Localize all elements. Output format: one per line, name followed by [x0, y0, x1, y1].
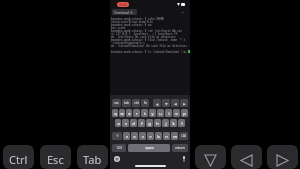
staticText: k — [172, 121, 175, 126]
button[interactable]: n — [163, 132, 170, 140]
staticText: brandon-angb:sshaio:~$ ls /sdcard/Downlo… — [111, 50, 187, 53]
staticText: y — [151, 111, 154, 116]
button[interactable]: q — [112, 109, 118, 117]
staticText: Ctrl — [9, 152, 28, 167]
staticText: ok: /etc/hosts No such file or directory — [111, 35, 176, 38]
staticText: z — [126, 134, 128, 139]
staticText: fn — [144, 101, 147, 105]
button[interactable]: esc — [112, 99, 121, 107]
button[interactable]: u — [157, 109, 164, 117]
staticText: Esc — [47, 152, 64, 167]
button[interactable]: o — [173, 109, 180, 117]
button[interactable]: d — [130, 119, 137, 127]
staticText: tab — [124, 101, 129, 105]
staticText: esc — [114, 101, 119, 105]
button[interactable]: j — [162, 119, 169, 127]
staticText: Terminal — [114, 10, 129, 15]
staticText: p — [183, 111, 186, 116]
button[interactable]: k — [170, 119, 177, 127]
button[interactable]: ⌫ — [179, 132, 188, 140]
staticText: brandon-angb:sshaio:~$ cat /etc/hosts &&… — [111, 29, 182, 32]
button[interactable]: b — [155, 132, 162, 140]
button[interactable]: space — [128, 144, 170, 152]
button[interactable]: Esc — [40, 145, 71, 169]
staticText: ▼ — [165, 102, 168, 105]
staticText: /data/user/0/com.term/file — [111, 20, 153, 23]
button[interactable]: ctrl — [132, 99, 140, 107]
staticText: x — [133, 134, 136, 139]
button[interactable]: fn — [141, 99, 149, 107]
staticText: t — [144, 111, 146, 116]
staticText: q — [114, 111, 117, 116]
button[interactable]: Tab — [77, 145, 108, 169]
staticText: i — [168, 111, 170, 116]
button[interactable]: v — [147, 132, 154, 140]
staticText: ctrl — [134, 101, 139, 105]
button[interactable]: g — [146, 119, 153, 127]
staticText: Tab — [83, 152, 102, 167]
staticText: 123 — [116, 146, 122, 150]
staticText: v — [149, 134, 152, 139]
staticText: c — [142, 134, 144, 139]
staticText: d — [132, 121, 135, 126]
staticText: u — [159, 111, 162, 116]
button[interactable]: h — [154, 119, 161, 127]
staticText: '/sdcard/Download/a.t — [111, 41, 145, 44]
button[interactable]: w — [119, 109, 125, 117]
button[interactable]: ◀ — [171, 99, 179, 107]
button[interactable]: r — [133, 109, 140, 117]
button[interactable]: ▲ — [153, 99, 161, 107]
staticText: w — [120, 111, 124, 116]
staticText: s — [125, 121, 127, 126]
button[interactable]: return — [172, 144, 188, 152]
staticText: o — [175, 111, 178, 116]
button[interactable]: Right — [267, 145, 298, 169]
staticText: brandon-angb:sshaio:~$ find /sdcard -nam… — [111, 38, 186, 41]
button[interactable]: Voice input — [181, 156, 187, 162]
button[interactable]: ▼ — [162, 99, 170, 107]
staticText: ⌫ — [181, 134, 186, 138]
staticText: ok: /sdcard/Download: No such file or di… — [111, 44, 187, 47]
button[interactable]: 123 — [112, 144, 126, 152]
button[interactable]: Down — [195, 145, 226, 169]
staticText: a — [117, 121, 120, 126]
staticText: h — [156, 121, 159, 126]
button[interactable]: Ctrl — [3, 145, 34, 169]
button[interactable]: x — [131, 132, 138, 140]
button[interactable]: Terminal — [112, 9, 137, 15]
button[interactable]: e — [126, 109, 132, 117]
staticText: return — [175, 146, 185, 150]
button[interactable]: i — [165, 109, 172, 117]
button[interactable]: tab — [122, 99, 131, 107]
staticText: + — [181, 9, 185, 17]
button[interactable]: ⇧ — [112, 132, 122, 140]
staticText: m — [173, 134, 177, 139]
button[interactable]: s — [122, 119, 129, 127]
button[interactable]: z — [123, 132, 130, 140]
button[interactable]: a — [115, 119, 121, 127]
staticText: ◀ — [174, 102, 177, 105]
staticText: n — [165, 134, 168, 139]
button[interactable]: y — [149, 109, 156, 117]
button[interactable]: t — [141, 109, 148, 117]
staticText: f — [141, 121, 143, 126]
staticText: b — [157, 134, 160, 139]
button[interactable]: Emoji — [114, 156, 120, 162]
staticText: brandon-angb:sshaio:~$ echo $HOME — [111, 17, 165, 20]
staticText: brandon-angb:sshaio:~$ pw — [111, 23, 152, 26]
staticText: j — [165, 121, 167, 126]
staticText: e — [128, 111, 131, 116]
staticText: /e 127.0.0.1 localhost ::1 localhost ff — [111, 32, 178, 35]
staticText: 00:46 — [119, 3, 128, 7]
button[interactable]: p — [181, 109, 188, 117]
button[interactable]: Left — [231, 145, 262, 169]
staticText: bin cache — [111, 26, 126, 29]
button[interactable]: m — [171, 132, 178, 140]
button[interactable]: c — [139, 132, 146, 140]
staticText: r — [136, 111, 138, 116]
button[interactable]: f — [138, 119, 145, 127]
button[interactable]: ▶ — [180, 99, 188, 107]
button[interactable]: l — [178, 119, 185, 127]
staticText: ⇧ — [116, 134, 119, 138]
staticText: space — [145, 146, 154, 150]
